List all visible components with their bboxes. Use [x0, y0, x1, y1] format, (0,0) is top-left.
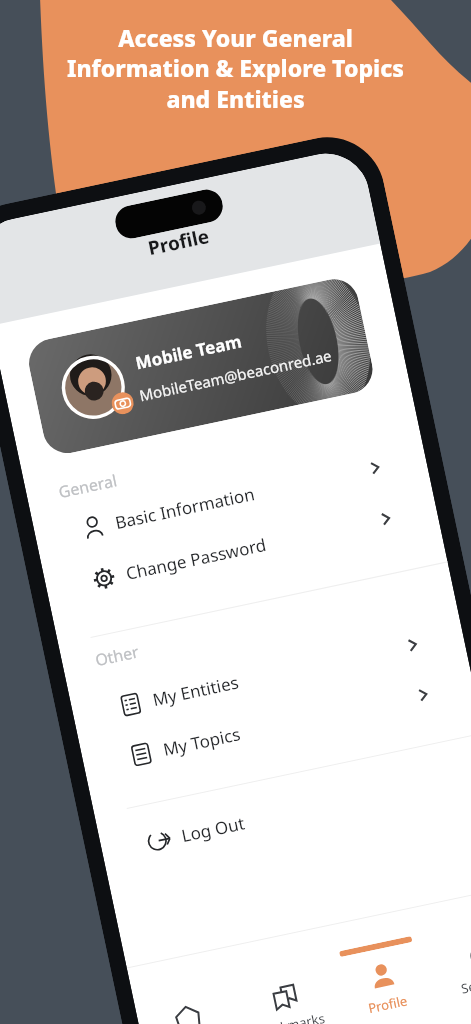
- staticText: MobileTeam@beaconred.ae: [137, 345, 333, 405]
- staticText: Mobile Team: [133, 329, 244, 374]
- button[interactable]: Settings: [418, 886, 471, 1003]
- button[interactable]: Change Password: [41, 482, 441, 615]
- button[interactable]: Home: [127, 948, 244, 1024]
- staticText: Access Your General Information & Explor…: [6, 22, 465, 115]
- button[interactable]: Change profile photo: [24, 275, 377, 458]
- button[interactable]: Log Out: [97, 744, 471, 878]
- button[interactable]: My Topics: [79, 658, 471, 791]
- button[interactable]: Profile: [321, 907, 439, 1023]
- button[interactable]: Basic Information: [31, 431, 431, 564]
- staticText: Bookmarks: [255, 1009, 327, 1024]
- staticText: Change Password: [124, 533, 268, 585]
- staticText: Profile: [366, 991, 409, 1017]
- button[interactable]: Change profile photo: [110, 390, 136, 416]
- staticText: Basic Information: [113, 482, 257, 534]
- button[interactable]: Bookmarks: [224, 928, 341, 1024]
- staticText: Other: [93, 640, 141, 671]
- staticText: General: [56, 469, 119, 503]
- staticText: Profile: [146, 223, 212, 261]
- staticText: Settings: [459, 970, 471, 998]
- staticText: My Entities: [150, 670, 241, 711]
- button[interactable]: My Entities: [68, 608, 468, 742]
- staticText: Log Out: [179, 811, 247, 847]
- staticText: My Topics: [161, 722, 243, 761]
